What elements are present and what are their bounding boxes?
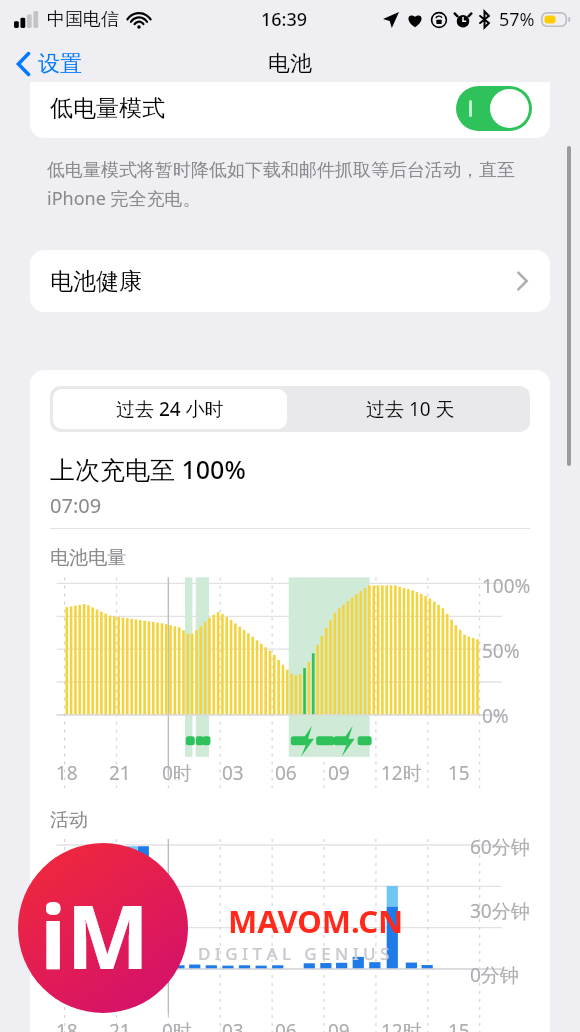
other: Battery Health	[517, 271, 528, 291]
staticText: 0时	[162, 1018, 192, 1032]
staticText: 09	[328, 760, 350, 786]
button[interactable]: 过去 24 小时	[53, 389, 287, 429]
staticText: 07:09	[50, 492, 102, 519]
button[interactable]: 低电量模式	[30, 82, 550, 138]
staticText: 12时	[381, 760, 422, 786]
staticText: 03	[222, 760, 244, 786]
button[interactable]: Low Power Mode toggle	[456, 86, 532, 131]
staticText: 设置	[38, 50, 82, 78]
staticText: 0分钟	[470, 962, 519, 988]
staticText: 0时	[162, 760, 192, 786]
staticText: 60分钟	[470, 834, 530, 860]
staticText: 06	[275, 1018, 297, 1032]
staticText: MAVOM.CN	[228, 900, 404, 942]
staticText: D I G I T A L G E N I U S	[198, 942, 390, 965]
staticText: 21	[109, 1018, 131, 1032]
staticText: 中国电信	[47, 8, 119, 31]
staticText: 18	[56, 760, 78, 786]
staticText: 上次充电至 100%	[50, 452, 246, 486]
staticText: 电池健康	[50, 267, 142, 296]
button[interactable]: 过去 10 天	[290, 386, 530, 432]
button[interactable]: 电池健康	[30, 250, 550, 312]
staticText: 09	[328, 1018, 350, 1032]
staticText: iM	[40, 875, 150, 995]
staticText: 低电量模式	[50, 94, 165, 123]
staticText: 活动	[50, 808, 88, 832]
staticText: 30分钟	[470, 898, 530, 924]
staticText: 03	[222, 1018, 244, 1032]
staticText: 0%	[482, 703, 509, 729]
staticText: 50%	[482, 638, 520, 664]
staticText: 电池电量	[50, 546, 126, 570]
staticText: 低电量模式将暂时降低如下载和邮件抓取等后台活动，直至 iPhone 完全充电。	[47, 157, 537, 210]
staticText: 15	[448, 1018, 470, 1032]
staticText: 过去 10 天	[366, 396, 455, 422]
staticText: 16:39	[261, 7, 308, 32]
button[interactable]: 设置	[10, 46, 88, 82]
staticText: 18	[56, 1018, 78, 1032]
staticText: 100%	[482, 573, 531, 599]
staticText: 06	[275, 760, 297, 786]
staticText: 15	[448, 760, 470, 786]
staticText: 电池	[268, 50, 312, 78]
staticText: 12时	[381, 1018, 422, 1032]
staticText: 57%	[499, 7, 535, 32]
staticText: 21	[109, 760, 131, 786]
staticText: 过去 24 小时	[116, 396, 224, 422]
